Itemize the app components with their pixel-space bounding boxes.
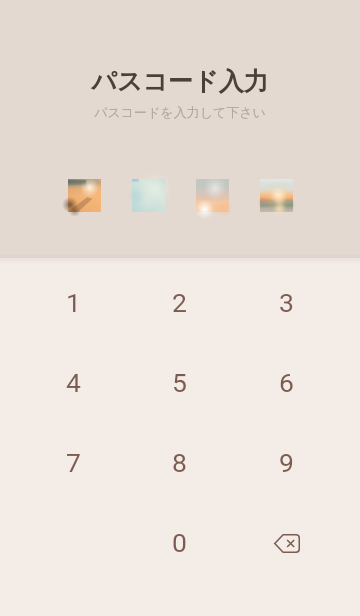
staticText: 2 bbox=[172, 287, 187, 318]
staticText: 8 bbox=[172, 447, 187, 478]
button[interactable]: 1 bbox=[20, 262, 126, 342]
staticText: 9 bbox=[279, 447, 294, 478]
button[interactable]: 8 bbox=[126, 422, 233, 502]
staticText: パスコード入力 bbox=[91, 66, 269, 97]
staticText: 5 bbox=[172, 367, 187, 398]
other: Delete bbox=[274, 534, 300, 553]
button[interactable]: Delete bbox=[233, 502, 340, 582]
staticText: 3 bbox=[279, 287, 294, 318]
staticText: 6 bbox=[279, 367, 294, 398]
button[interactable]: 0 bbox=[126, 502, 233, 582]
button[interactable]: 2 bbox=[126, 262, 233, 342]
staticText: 7 bbox=[66, 447, 81, 478]
button[interactable]: 4 bbox=[20, 342, 126, 422]
button[interactable]: 3 bbox=[233, 262, 340, 342]
button[interactable]: 7 bbox=[20, 422, 126, 502]
staticText: 4 bbox=[66, 367, 81, 398]
staticText: 0 bbox=[172, 527, 187, 558]
button[interactable]: 5 bbox=[126, 342, 233, 422]
staticText: パスコードを入力して下さい bbox=[94, 104, 266, 120]
button[interactable]: 9 bbox=[233, 422, 340, 502]
button[interactable]: 6 bbox=[233, 342, 340, 422]
staticText: 1 bbox=[66, 287, 81, 318]
